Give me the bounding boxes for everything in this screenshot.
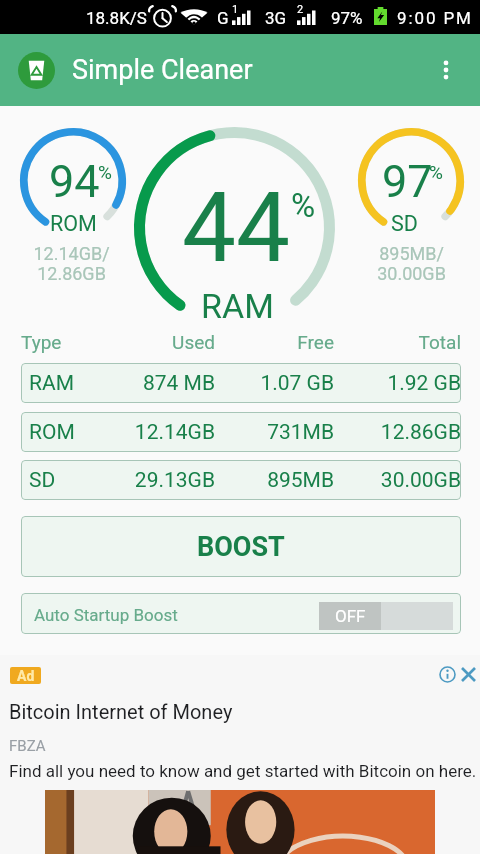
button[interactable]: RAM [21,363,461,403]
button[interactable]: Ad information [437,664,458,685]
staticText: 9:00 PM [397,8,473,28]
staticText: % [429,161,443,183]
button[interactable]: SD [21,460,461,500]
staticText: Bitcoin Internet of Money [9,700,233,723]
staticText: Type [21,331,94,353]
button[interactable]: BOOST [21,516,461,577]
staticText: 1.07 GB [215,371,334,396]
button[interactable]: Close ad [458,664,479,685]
staticText: Ad [17,668,35,684]
staticText: OFF [335,606,366,626]
staticText: 895MB/ 30.00GB [341,243,480,284]
staticText: BOOST [197,531,285,563]
staticText: 44 [182,172,290,285]
staticText: SD [391,211,418,236]
staticText: RAM [201,286,274,326]
staticText: 97 [382,155,433,208]
staticText: 12.14GB/ 12.86GB [1,243,142,284]
button[interactable]: ROM [21,412,461,452]
staticText: 94 [49,155,100,208]
staticText: 895MB [215,468,334,493]
button[interactable]: Auto Startup Boost [21,593,461,634]
staticText: 1 [232,3,239,16]
button[interactable]: More options [426,50,466,90]
staticText: 29.13GB [94,468,215,493]
staticText: Auto Startup Boost [34,605,178,625]
staticText: 97% [331,8,363,28]
staticText: 18.8K/S [86,8,147,28]
staticText: 12.86GB [334,420,461,445]
staticText: % [291,186,316,225]
staticText: ROM [29,420,94,445]
staticText: 731MB [215,420,334,445]
staticText: G [217,8,229,28]
staticText: Simple Cleaner [72,54,253,86]
staticText: 30.00GB [334,468,461,493]
staticText: SD [29,468,94,493]
staticText: 1.92 GB [334,371,461,396]
staticText: % [98,161,112,183]
staticText: 3G [265,8,287,28]
staticText: RAM [29,371,94,396]
staticText: 874 MB [94,371,215,396]
staticText: Free [215,331,334,353]
staticText: Used [94,331,215,353]
button[interactable]: Ad [10,667,41,684]
staticText: 2 [297,3,304,16]
staticText: Total [334,331,461,353]
staticText: ROM [50,211,97,236]
staticText: 12.14GB [94,420,215,445]
staticText: FBZA [9,737,46,755]
staticText: Find all you need to know and get starte… [9,761,477,781]
